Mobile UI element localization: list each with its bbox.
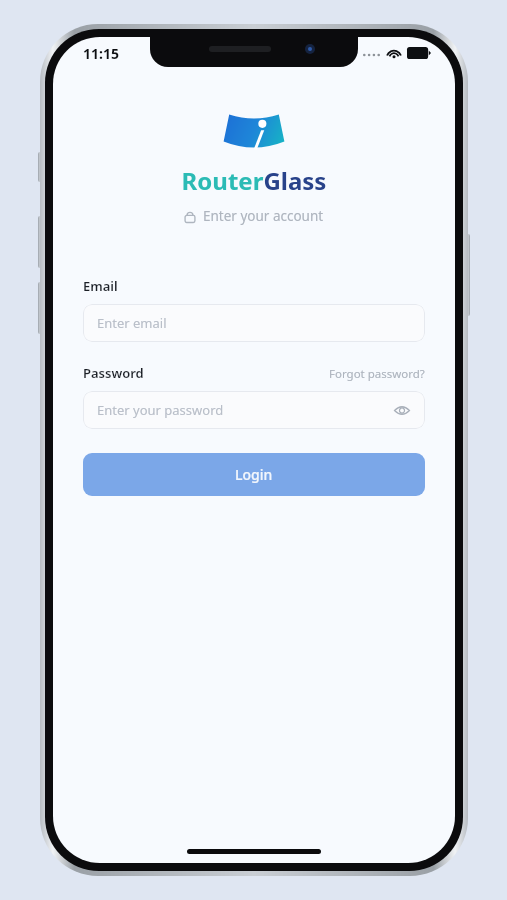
button[interactable]: Enter email bbox=[83, 304, 425, 342]
staticText: Login bbox=[235, 465, 273, 484]
button[interactable]: Show password bbox=[391, 399, 413, 421]
button[interactable]: Forgot password? bbox=[329, 366, 425, 382]
staticText: Enter email bbox=[97, 314, 167, 332]
staticText: RouterGlass bbox=[53, 164, 455, 197]
staticText: Email bbox=[83, 277, 118, 295]
staticText: Password bbox=[83, 364, 144, 382]
staticText: Enter your account bbox=[203, 207, 324, 225]
button[interactable]: Login bbox=[83, 453, 425, 496]
staticText: Enter your password bbox=[97, 401, 224, 419]
staticText: Forgot password? bbox=[329, 366, 425, 382]
staticText: 11:15 bbox=[83, 44, 119, 63]
button[interactable]: Enter your password bbox=[83, 391, 425, 429]
